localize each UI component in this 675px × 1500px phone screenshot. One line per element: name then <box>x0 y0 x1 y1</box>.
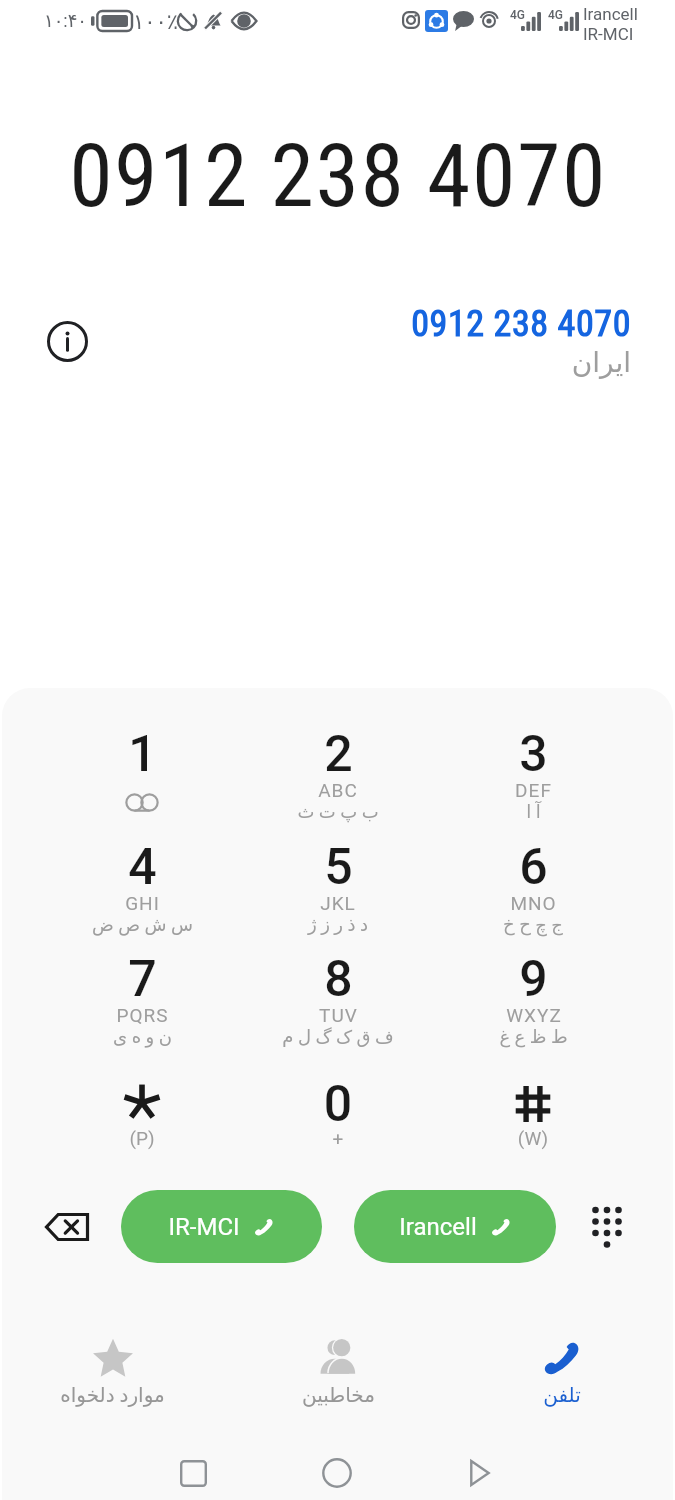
staticText: ن و ه ی <box>113 1026 172 1047</box>
button[interactable]: Recent apps <box>163 1443 223 1500</box>
button[interactable]: 1 <box>47 725 237 837</box>
staticText: GHI <box>125 892 160 914</box>
staticText: + <box>278 1127 398 1149</box>
button[interactable]: Backspace <box>27 1188 107 1266</box>
button[interactable]: 4 <box>47 838 237 950</box>
staticText: ABC <box>318 779 358 801</box>
staticText: ایران <box>571 346 631 379</box>
staticText: 5 <box>324 838 353 897</box>
staticText: 6 <box>519 838 548 897</box>
staticText: تلفن <box>543 1383 581 1406</box>
staticText: WXYZ <box>506 1004 562 1026</box>
staticText: 0912 238 4070 <box>411 303 631 345</box>
staticText: 3 <box>519 725 548 784</box>
staticText: ف ق ک گ ل م <box>282 1026 394 1047</box>
staticText: (P) <box>82 1127 202 1149</box>
staticText: 1 <box>128 725 157 784</box>
button[interactable]: 5 <box>243 838 433 950</box>
staticText: ج چ ح خ <box>503 914 563 935</box>
button[interactable] <box>438 1064 628 1148</box>
staticText: ۱۰:۴۰ <box>44 10 88 31</box>
staticText: 2 <box>324 725 353 784</box>
staticText: IR-MCI <box>168 1213 240 1241</box>
staticText: 8 <box>324 950 353 1009</box>
staticText: 4G <box>548 8 563 22</box>
button[interactable]: 7 <box>47 950 237 1062</box>
staticText: MNO <box>510 892 557 914</box>
staticText: د ذ ر ز ژ <box>308 914 368 935</box>
staticText: (W) <box>473 1127 593 1149</box>
button[interactable] <box>47 1064 237 1148</box>
button[interactable]: مخاطبین <box>253 1337 423 1417</box>
staticText: TUV <box>319 1004 358 1026</box>
button[interactable]: Information <box>44 318 90 364</box>
staticText: مخاطبین <box>302 1383 375 1406</box>
staticText: ط ظ ع غ <box>499 1026 568 1047</box>
button[interactable]: 3 <box>438 725 628 837</box>
button[interactable]: Hide keypad <box>567 1188 647 1266</box>
staticText: 9 <box>519 950 548 1009</box>
staticText: س ش ص ض <box>92 914 193 935</box>
button[interactable]: 2 <box>243 725 433 837</box>
staticText: ۱۰۰٪ <box>133 10 179 34</box>
button[interactable] <box>243 1064 433 1148</box>
button[interactable]: 8 <box>243 950 433 1062</box>
staticText: JKL <box>320 892 356 914</box>
staticText: Irancell <box>399 1213 477 1241</box>
staticText: موارد دلخواه <box>60 1383 165 1406</box>
staticText: 0912 238 4070 <box>69 124 607 227</box>
staticText: 4 <box>128 838 157 897</box>
staticText: DEF <box>515 779 552 801</box>
staticText: آ ا <box>526 801 541 822</box>
button[interactable]: تلفن <box>477 1337 647 1417</box>
button[interactable]: 6 <box>438 838 628 950</box>
staticText: 4G <box>510 8 525 22</box>
staticText: IR-MCI <box>583 24 634 44</box>
button[interactable]: Home <box>307 1443 367 1500</box>
button[interactable]: Irancell <box>354 1190 556 1263</box>
staticText: PQRS <box>116 1004 169 1026</box>
staticText: 7 <box>128 950 157 1009</box>
button[interactable]: 9 <box>438 950 628 1062</box>
button[interactable]: IR-MCI <box>121 1190 322 1263</box>
button[interactable]: Back <box>448 1443 508 1500</box>
staticText: 0 <box>278 1075 398 1134</box>
staticText: Irancell <box>583 4 638 24</box>
button[interactable]: موارد دلخواه <box>27 1337 197 1417</box>
staticText: ب پ ت ث <box>297 801 379 822</box>
